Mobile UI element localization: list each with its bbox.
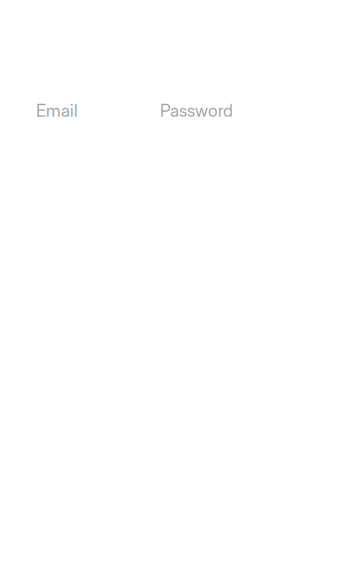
staticText: Password — [160, 100, 233, 121]
staticText: Email — [36, 100, 78, 121]
